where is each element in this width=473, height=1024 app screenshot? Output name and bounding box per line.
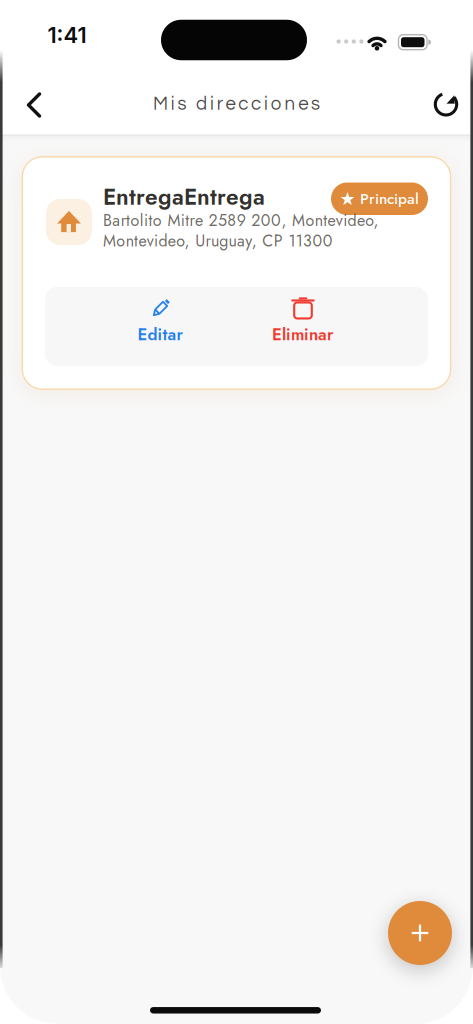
- staticText: Montevideo, Uruguay, CP 11300: [103, 229, 333, 253]
- staticText: Bartolito Mitre 2589 200, Montevideo,: [103, 209, 379, 232]
- staticText: EntregaEntrega: [103, 180, 265, 213]
- staticText: Editar: [137, 322, 183, 347]
- button[interactable]: [424, 82, 468, 126]
- button[interactable]: Eliminar: [243, 286, 363, 358]
- staticText: Eliminar: [272, 322, 334, 347]
- button[interactable]: [12, 83, 56, 127]
- staticText: Principal: [360, 188, 419, 210]
- button[interactable]: [388, 901, 452, 965]
- button[interactable]: Editar: [100, 286, 220, 358]
- staticText: 1:41: [47, 22, 86, 48]
- staticText: Mis direcciones: [153, 94, 320, 114]
